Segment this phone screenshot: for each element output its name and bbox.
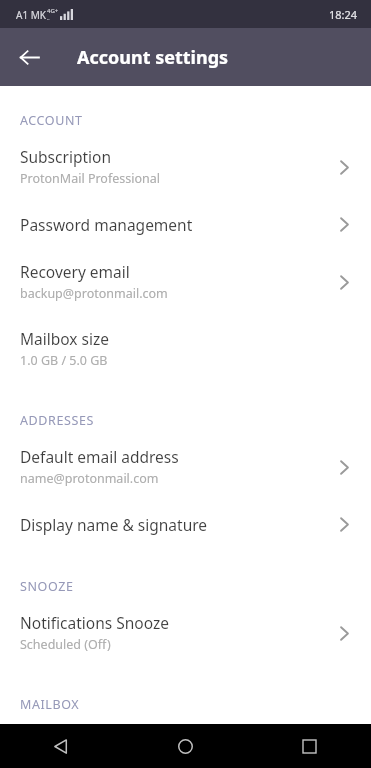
staticText: Account settings [77,45,229,70]
staticText: SNOOZE [20,578,371,595]
staticText: Notifications Snooze [20,612,169,633]
staticText: MAILBOX [20,696,371,713]
staticText: Subscription [20,146,111,167]
button[interactable]: Default email address [0,433,371,500]
button[interactable]: Recent apps [247,724,371,768]
staticText: 18:24 [329,7,358,22]
staticText: ProtonMail Professional [20,170,161,187]
staticText: name@protonmail.com [20,470,159,487]
staticText: Default email address [20,446,179,467]
staticText: Mailbox size [20,328,110,349]
staticText: backup@protonmail.com [20,285,168,302]
staticText: Password management [20,214,193,235]
button[interactable]: Back [8,36,50,78]
button[interactable]: Mailbox size [0,315,371,382]
button[interactable]: Display name & signature [0,500,371,548]
staticText: Recovery email [20,261,130,282]
staticText: 1.0 GB / 5.0 GB [20,352,108,369]
button[interactable]: Recovery email [0,248,371,315]
button[interactable]: Home [123,724,247,768]
button[interactable]: Notifications Snooze [0,599,371,666]
button[interactable]: Back [0,724,123,768]
button[interactable]: Subscription [0,133,371,200]
staticText: A1 MK [16,8,46,22]
staticText: Scheduled (Off) [20,636,111,653]
staticText: ACCOUNT [20,112,371,129]
button[interactable]: Password management [0,200,371,248]
staticText: 4G+ [47,7,59,15]
staticText: ADDRESSES [20,412,371,429]
staticText: .. [47,15,50,22]
staticText: Display name & signature [20,514,208,535]
